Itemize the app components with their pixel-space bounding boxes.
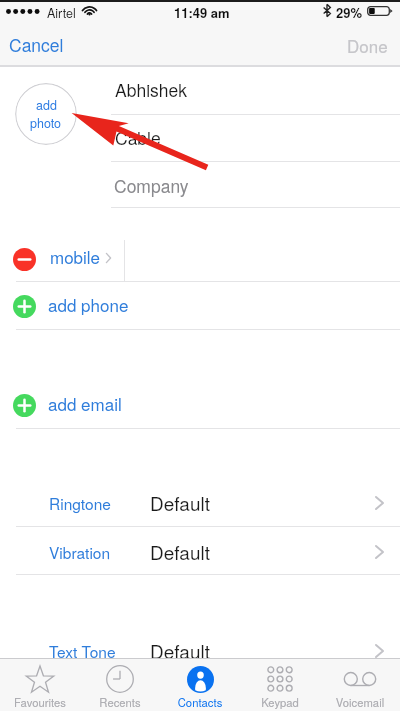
staticText: Default (150, 489, 211, 516)
button[interactable]: Cable (0, 114, 400, 161)
button[interactable]: Ringtone (0, 479, 400, 526)
staticText: Keypad (240, 694, 320, 710)
button[interactable]: Done (339, 29, 396, 61)
button[interactable]: Vibration (0, 528, 400, 575)
staticText: 29% (336, 3, 363, 22)
staticText: Voicemail (320, 694, 400, 710)
staticText: add (36, 96, 57, 114)
staticText: add phone (48, 292, 129, 316)
button[interactable]: Voicemail (320, 659, 400, 711)
staticText: Company (114, 173, 189, 198)
staticText: Abhishek (115, 77, 188, 102)
staticText: photo (30, 114, 62, 132)
staticText: Vibration (49, 541, 111, 563)
button[interactable]: Text Tone (0, 627, 400, 674)
staticText: Ringtone (49, 492, 111, 514)
button[interactable]: Cancel (1, 28, 72, 61)
staticText: Done (347, 33, 388, 57)
staticText: Airtel (47, 4, 76, 22)
staticText: Text Tone (49, 640, 116, 662)
staticText: Recents (80, 694, 160, 710)
staticText: mobile (50, 244, 101, 268)
button[interactable]: Favourites (0, 659, 80, 711)
button[interactable]: Recents (80, 659, 160, 711)
staticText: 11:49 am (174, 3, 230, 22)
button[interactable]: mobile (0, 236, 400, 281)
staticText: Default (150, 637, 211, 664)
staticText: add email (48, 391, 122, 415)
button[interactable]: Company (0, 161, 400, 207)
staticText: Default (150, 538, 211, 565)
staticText: Cable (115, 125, 161, 150)
button[interactable]: Add photo (15, 83, 77, 145)
button[interactable]: add email (0, 383, 400, 428)
button[interactable]: Abhishek (0, 68, 400, 115)
staticText: Cancel (9, 32, 64, 57)
button[interactable]: add phone (0, 284, 400, 329)
button[interactable]: Contacts (160, 659, 240, 711)
button[interactable]: Keypad (240, 659, 320, 711)
staticText: Favourites (0, 694, 80, 710)
staticText: Contacts (160, 694, 240, 710)
